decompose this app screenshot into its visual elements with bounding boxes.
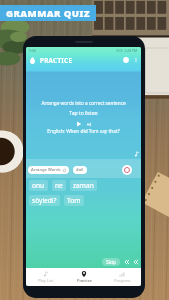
button[interactable]: Practice xyxy=(65,268,103,286)
button[interactable]: Arrange Words xyxy=(28,166,69,174)
staticText: zaman xyxy=(73,181,94,190)
staticText: Arrange Words xyxy=(31,167,61,173)
button[interactable]: Progress xyxy=(103,268,141,286)
staticText: Tap to listen xyxy=(26,110,141,117)
button[interactable]: #all xyxy=(73,166,87,174)
button[interactable]: söyledi? xyxy=(29,195,60,206)
button[interactable]: ne xyxy=(52,180,66,191)
button[interactable]: More options xyxy=(134,58,138,62)
staticText: onu xyxy=(32,181,45,190)
button[interactable]: Shuffle words xyxy=(122,165,132,175)
button[interactable]: Previous question xyxy=(124,259,130,265)
button[interactable]: Next question xyxy=(133,259,139,265)
staticText: 9:48 xyxy=(29,48,36,53)
staticText: Skip xyxy=(106,259,116,266)
staticText: söyledi? xyxy=(32,196,57,205)
staticText: Progress xyxy=(114,278,131,283)
staticText: GRAMMAR QUIZ xyxy=(6,7,91,20)
staticText: Tom xyxy=(67,196,81,205)
staticText: #all xyxy=(76,167,84,173)
button[interactable]: onu xyxy=(29,180,48,191)
staticText: Practice xyxy=(77,278,92,283)
staticText: ne xyxy=(55,181,63,190)
button[interactable]: Account xyxy=(123,57,129,63)
button[interactable]: Audio settings xyxy=(134,151,140,157)
staticText: English: When did Tom say that? xyxy=(26,128,141,135)
staticText: Play List xyxy=(38,278,54,283)
button[interactable]: Play List xyxy=(26,268,65,286)
button[interactable]: Play xyxy=(76,121,82,127)
button[interactable]: zaman xyxy=(70,180,97,191)
staticText: Arrange words into a correct sentence xyxy=(26,100,141,106)
button[interactable]: Speaker xyxy=(87,122,92,127)
button[interactable]: Tom xyxy=(64,195,84,206)
staticText: 25% 5:28 PM xyxy=(116,48,138,53)
button[interactable]: Skip xyxy=(102,258,120,266)
staticText: PRACTICE xyxy=(40,56,73,64)
